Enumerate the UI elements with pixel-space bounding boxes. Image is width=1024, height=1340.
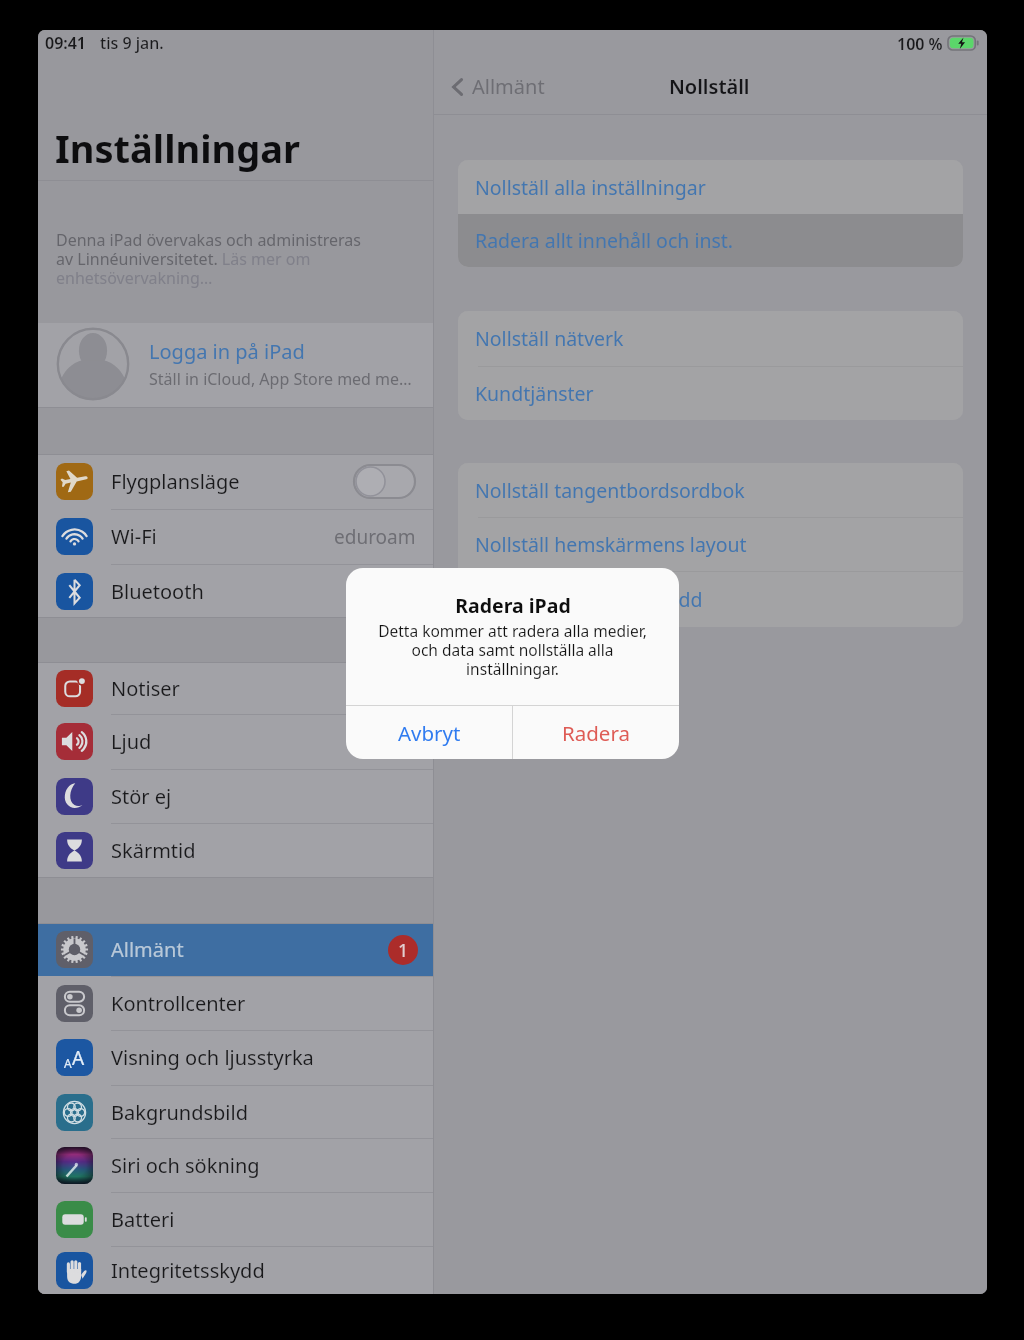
button[interactable]: Flygplansläge	[38, 454, 434, 509]
staticText: Wi-Fi	[111, 523, 157, 550]
button[interactable]: Nollställ tangentbordsordbok	[458, 463, 963, 517]
staticText: Stör ej	[111, 783, 172, 810]
staticText: Nollställ	[669, 73, 750, 100]
staticText: Skärmtid	[111, 837, 196, 864]
staticText: Nollställ nätverk	[475, 325, 624, 352]
staticText: 100 %	[897, 33, 943, 55]
staticText: Nollställ tangentbordsordbok	[475, 477, 745, 504]
staticText: Batteri	[111, 1206, 175, 1233]
button[interactable]: Logga in på iPad	[38, 323, 434, 407]
staticText: Nollställ integritetsskydd	[475, 586, 703, 613]
button[interactable]: Notiser	[38, 662, 434, 714]
button[interactable]: A	[38, 1030, 434, 1085]
button[interactable]: Siri och sökning	[38, 1138, 434, 1192]
button[interactable]: Allmänt	[38, 923, 434, 976]
staticText: Bakgrundsbild	[111, 1099, 248, 1126]
button[interactable]: Radera	[513, 706, 679, 759]
button[interactable]: Bluetooth	[38, 564, 434, 618]
staticText: eduroam	[334, 524, 416, 550]
staticText: Radera	[562, 719, 630, 747]
button[interactable]: Kundtjänster	[458, 367, 963, 420]
staticText: Kundtjänster	[475, 380, 594, 407]
staticText: A	[64, 1055, 72, 1071]
staticText: Visning och ljusstyrka	[111, 1044, 314, 1071]
staticText: Radera allt innehåll och inst.	[475, 227, 734, 254]
staticText: Kontrollcenter	[111, 990, 246, 1017]
staticText: A	[72, 1045, 85, 1071]
staticText: Ljud	[111, 728, 152, 755]
button[interactable]: Bakgrundsbild	[38, 1085, 434, 1139]
staticText: Detta kommer att radera alla medier, och…	[378, 620, 647, 680]
button[interactable]: Kontrollcenter	[38, 976, 434, 1030]
button[interactable]: Allmänt	[447, 73, 545, 100]
staticText: Denna iPad övervakas och administreras a…	[56, 229, 361, 289]
staticText: Avbryt	[398, 719, 461, 747]
staticText: Nollställ hemskärmens layout	[475, 531, 747, 558]
staticText: Logga in på iPad	[149, 338, 305, 365]
staticText: 09:41	[45, 32, 87, 54]
button[interactable]: Avbryt	[346, 706, 512, 759]
button[interactable]: Nollställ nätverk	[458, 311, 963, 366]
staticText: Nollställ alla inställningar	[475, 174, 706, 201]
staticText: Integritetsskydd	[111, 1257, 265, 1284]
button[interactable]: Integritetsskydd	[38, 1246, 434, 1294]
staticText: Allmänt	[111, 936, 184, 963]
button[interactable]: Ljud	[38, 714, 434, 769]
staticText: tis 9 jan.	[100, 32, 164, 54]
button[interactable]: Flygplansläge på/av	[354, 465, 415, 498]
staticText: Inställningar	[55, 122, 300, 174]
button[interactable]: Nollställ hemskärmens layout	[458, 518, 963, 571]
staticText: Radera iPad	[455, 592, 571, 619]
button[interactable]: Wi-Fi	[38, 509, 434, 564]
staticText: 1	[398, 938, 409, 963]
button[interactable]: Nollställ alla inställningar	[458, 160, 963, 214]
staticText: Ställ in iCloud, App Store med me…	[149, 368, 412, 390]
button[interactable]: Radera allt innehåll och inst.	[458, 214, 963, 267]
button[interactable]: Batteri	[38, 1192, 434, 1246]
staticText: Flygplansläge	[111, 468, 240, 495]
button[interactable]: Skärmtid	[38, 823, 434, 877]
staticText: Siri och sökning	[111, 1152, 260, 1179]
staticText: Allmänt	[472, 73, 545, 100]
button[interactable]: Nollställ integritetsskydd	[458, 572, 963, 627]
staticText: Notiser	[111, 675, 180, 702]
button[interactable]: Stör ej	[38, 769, 434, 823]
staticText: Bluetooth	[111, 578, 204, 605]
